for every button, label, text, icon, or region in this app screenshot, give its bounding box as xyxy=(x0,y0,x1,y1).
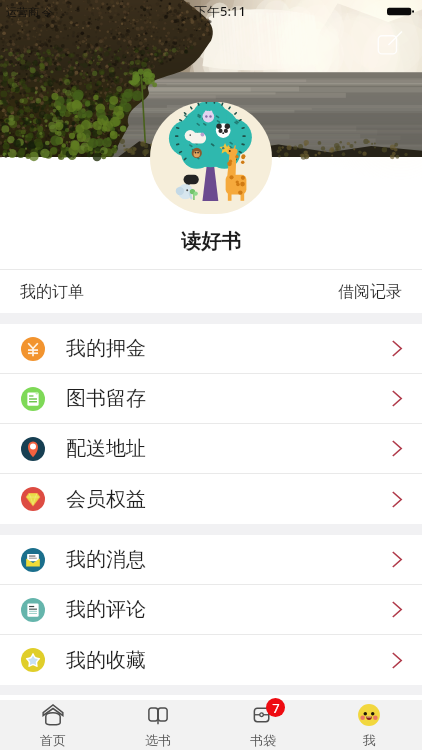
button[interactable]: Edit profile xyxy=(374,27,406,59)
staticText: 我的消息 xyxy=(66,547,146,572)
staticText: 首页 xyxy=(40,732,66,748)
staticText: 我的评论 xyxy=(66,597,146,622)
button[interactable]: 我的押金 xyxy=(0,324,422,373)
button[interactable]: 选书 xyxy=(105,700,210,750)
staticText: 借阅记录 xyxy=(338,282,402,302)
button[interactable]: 我的订单 xyxy=(0,270,422,313)
button[interactable]: 首页 xyxy=(0,700,105,750)
staticText: 会员权益 xyxy=(66,487,146,512)
staticText: 7 xyxy=(272,699,280,717)
staticText: 选书 xyxy=(145,732,171,748)
button[interactable]: 图书留存 xyxy=(0,374,422,423)
button[interactable]: 我 xyxy=(316,700,422,750)
button[interactable]: 我的消息 xyxy=(0,535,422,584)
staticText: 配送地址 xyxy=(66,436,146,461)
staticText: 我的订单 xyxy=(20,282,84,302)
button[interactable]: 我的评论 xyxy=(0,585,422,634)
button[interactable]: 会员权益 xyxy=(0,474,422,524)
staticText: 运营商 令 xyxy=(6,4,53,19)
button[interactable]: 我的收藏 xyxy=(0,635,422,685)
staticText: 下午5:11 xyxy=(194,2,246,20)
staticText: 我 xyxy=(363,732,376,748)
button[interactable]: 7 xyxy=(210,700,316,750)
staticText: 我的押金 xyxy=(66,336,146,361)
button[interactable]: Avatar xyxy=(150,102,272,214)
button[interactable]: 配送地址 xyxy=(0,424,422,473)
staticText: 图书留存 xyxy=(66,386,146,411)
staticText: 书袋 xyxy=(250,732,276,748)
staticText: 我的收藏 xyxy=(66,648,146,673)
staticText: 读好书 xyxy=(181,229,241,254)
